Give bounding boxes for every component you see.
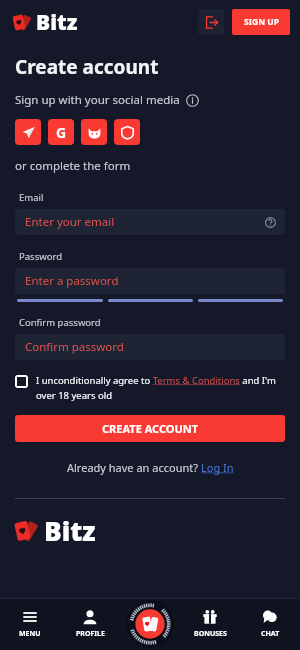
staticText: Bitz [36, 8, 78, 37]
button[interactable]: Info [186, 94, 199, 107]
staticText: Bitz [44, 513, 96, 549]
button[interactable]: Steam [114, 119, 140, 145]
button[interactable]: PROFILE [60, 598, 120, 650]
button[interactable]: CREATE ACCOUNT [15, 415, 285, 442]
staticText: Confirm password [19, 316, 101, 329]
staticText: Sign up with your social media [15, 92, 180, 108]
button[interactable]: MENU [0, 598, 60, 650]
button[interactable]: Agree to terms [15, 375, 28, 388]
button[interactable]: Log in [198, 9, 224, 35]
button[interactable]: Deposit [126, 600, 174, 648]
staticText: or complete the form [15, 158, 131, 174]
staticText: Email [19, 191, 44, 204]
button[interactable]: Enter your email [15, 209, 285, 235]
button[interactable]: VK [81, 119, 107, 145]
staticText: Create account [15, 54, 159, 80]
button[interactable]: Log In [201, 460, 234, 475]
staticText: MENU [19, 629, 41, 639]
button[interactable]: Enter a password [15, 268, 285, 294]
staticText: Confirm password [25, 339, 124, 355]
staticText: Log In [201, 460, 234, 475]
staticText: Enter a password [25, 273, 119, 289]
button[interactable]: BONUSES [180, 598, 240, 650]
staticText: PROFILE [76, 629, 105, 639]
button[interactable]: SIGN UP [232, 9, 290, 35]
staticText: G [56, 123, 67, 142]
staticText: Enter your email [25, 214, 115, 230]
staticText: Already have an account? [67, 460, 201, 475]
staticText: SIGN UP [244, 16, 279, 28]
staticText: CHAT [261, 629, 280, 639]
staticText: BONUSES [194, 629, 227, 639]
staticText: CREATE ACCOUNT [102, 421, 199, 436]
button[interactable]: I unconditionally agree to Terms & Condi… [36, 374, 288, 402]
button[interactable]: Telegram [15, 119, 41, 145]
button[interactable]: CHAT [240, 598, 300, 650]
button[interactable]: Confirm password [15, 334, 285, 360]
button[interactable]: Google [48, 119, 74, 145]
staticText: Password [19, 250, 62, 263]
